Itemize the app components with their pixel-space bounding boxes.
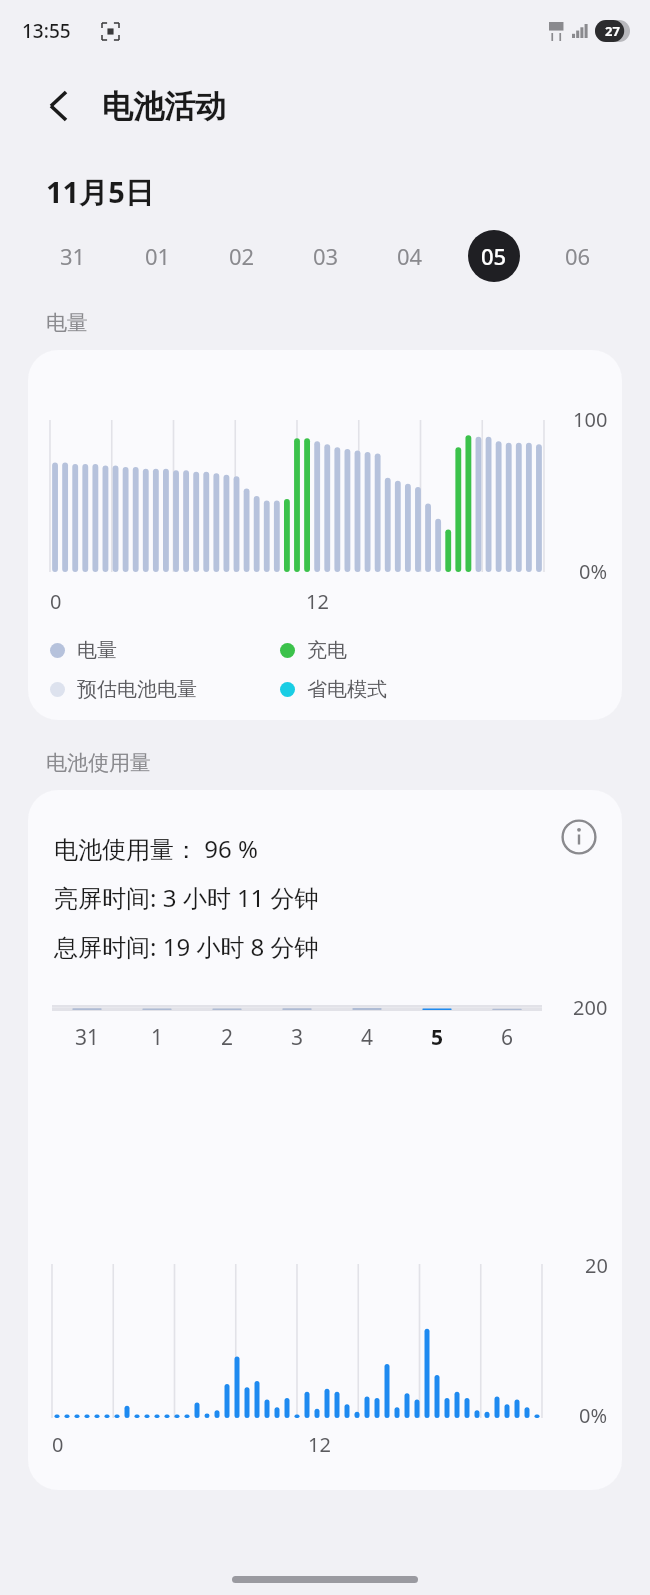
- button[interactable]: 03: [284, 228, 368, 284]
- button[interactable]: Info: [556, 814, 602, 860]
- staticText: 02: [229, 241, 255, 271]
- staticText: 2: [221, 1023, 234, 1052]
- staticText: 200: [573, 994, 608, 1021]
- staticText: 亮屏时间: 3 小时 11 分钟: [54, 881, 319, 914]
- staticText: 12: [308, 1431, 331, 1458]
- staticText: 0: [52, 1431, 64, 1458]
- staticText: 预估电池电量: [77, 677, 197, 702]
- staticText: 31: [75, 1023, 100, 1052]
- button[interactable]: 电池使用量： 96 %: [28, 790, 622, 1490]
- staticText: 5: [431, 1023, 444, 1052]
- staticText: 100: [573, 406, 608, 433]
- staticText: 12: [306, 588, 329, 615]
- staticText: 电池使用量： 96 %: [54, 832, 258, 865]
- staticText: 1: [151, 1023, 164, 1052]
- staticText: 11月5日: [46, 172, 154, 212]
- staticText: 27: [605, 22, 620, 40]
- staticText: 息屏时间: 19 小时 8 分钟: [54, 930, 319, 963]
- staticText: 电量: [46, 310, 88, 336]
- staticText: 4: [361, 1023, 374, 1052]
- button[interactable]: 02: [200, 228, 284, 284]
- staticText: 13:55: [22, 18, 71, 44]
- staticText: 0%: [579, 558, 608, 585]
- button[interactable]: 06: [536, 228, 620, 284]
- staticText: 31: [60, 241, 86, 271]
- staticText: 01: [145, 241, 171, 271]
- button[interactable]: 31: [30, 228, 115, 284]
- button[interactable]: 100: [28, 350, 622, 720]
- button[interactable]: 05: [452, 228, 536, 284]
- staticText: 3: [291, 1023, 304, 1052]
- staticText: 电池活动: [102, 87, 226, 126]
- button[interactable]: 01: [115, 228, 200, 284]
- staticText: 20: [585, 1252, 608, 1279]
- staticText: 05: [481, 241, 507, 271]
- staticText: 03: [313, 241, 339, 271]
- staticText: 6: [501, 1023, 514, 1052]
- staticText: 省电模式: [307, 677, 387, 702]
- staticText: 04: [397, 241, 423, 271]
- staticText: 0%: [579, 1402, 608, 1429]
- staticText: 0: [50, 588, 62, 615]
- staticText: 电池使用量: [46, 750, 151, 776]
- staticText: 06: [565, 241, 591, 271]
- staticText: 电量: [77, 638, 117, 663]
- staticText: 充电: [307, 638, 347, 663]
- button[interactable]: 04: [368, 228, 452, 284]
- button[interactable]: Back: [34, 82, 82, 130]
